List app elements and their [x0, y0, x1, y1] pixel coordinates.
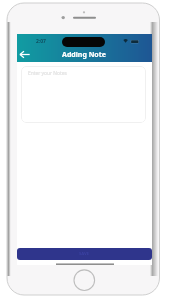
- staticText: Adding Note: [62, 50, 106, 60]
- staticText: SAVE: [79, 251, 90, 257]
- staticText: 2:07: [36, 38, 46, 45]
- button[interactable]: Enter your Notes: [21, 66, 146, 123]
- staticText: Enter your Notes: [28, 70, 67, 77]
- button[interactable]: Back: [17, 47, 32, 62]
- button[interactable]: SAVE: [17, 248, 152, 260]
